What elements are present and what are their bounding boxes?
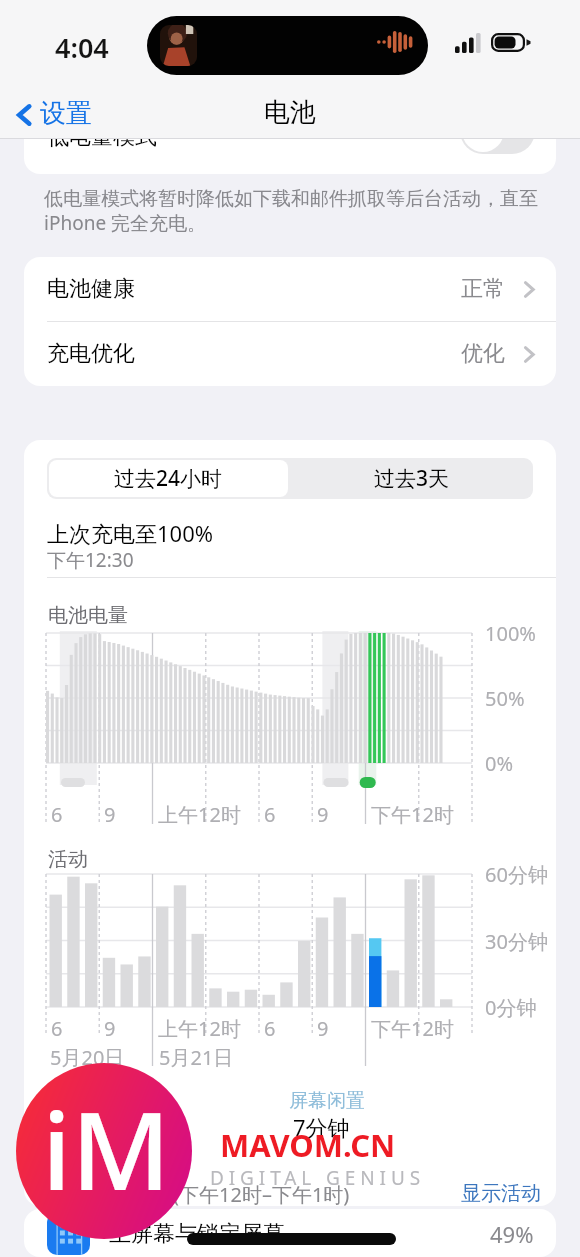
staticText: 49% — [490, 1219, 534, 1249]
staticText: 电池电量 — [48, 603, 128, 628]
staticText: 9 — [317, 1015, 329, 1042]
staticText: 优化 — [461, 340, 505, 368]
staticText: 低电量模式将暂时降低如下载和邮件抓取等后台活动，直至 iPhone 完全充电。 — [44, 187, 538, 235]
button[interactable]: 电池健康 — [24, 257, 556, 321]
staticText: 活动 — [48, 847, 88, 872]
staticText: 充电优化 — [47, 340, 135, 368]
button[interactable]: 低电量模式 — [24, 126, 556, 174]
staticText: 4:04 — [55, 29, 109, 66]
staticText: MAVOM.CN — [220, 1124, 396, 1166]
button[interactable]: 过去3天 — [290, 458, 533, 499]
staticText: 过去24小时 — [114, 464, 223, 493]
staticText: 设置 — [40, 97, 92, 130]
staticText: 上午12时 — [158, 801, 241, 828]
staticText: 50% — [485, 685, 525, 712]
staticText: 0分钟 — [485, 994, 537, 1021]
staticText: 60分钟 — [485, 861, 548, 888]
staticText: 屏幕闲置 — [289, 1089, 365, 1113]
staticText: 下午12:30 — [47, 547, 134, 573]
staticText: 过去3天 — [374, 464, 450, 493]
staticText: 7分钟 — [293, 1112, 350, 1142]
staticText: 9 — [104, 1015, 116, 1042]
staticText: 5月20日 — [50, 1044, 125, 1071]
staticText: 主屏幕与锁定屏幕 — [109, 1220, 285, 1248]
staticText: 低电量模式 — [47, 126, 157, 151]
button[interactable]: 过去24小时 — [49, 460, 288, 497]
staticText: 上次充电至100% — [47, 518, 214, 548]
staticText: 30分钟 — [485, 928, 548, 955]
staticText: 100% — [485, 620, 536, 647]
staticText: 下午12时 — [371, 801, 454, 828]
staticText: 5月21日 — [159, 1044, 234, 1071]
staticText: 上午12时 — [158, 1015, 241, 1042]
staticText: (下午12时–下午1时) — [173, 1181, 350, 1206]
staticText: DIGITAL GENIUS — [210, 1165, 426, 1191]
button[interactable]: 返回设置 — [8, 95, 96, 134]
staticText: 电池健康 — [47, 275, 135, 303]
staticText: 正常 — [461, 275, 505, 303]
button[interactable]: 充电优化 — [24, 322, 556, 386]
staticText: 9 — [104, 801, 116, 828]
staticText: 电池 — [264, 96, 316, 129]
staticText: 6 — [264, 801, 276, 828]
staticText: 6 — [51, 801, 63, 828]
staticText: 0% — [485, 750, 514, 777]
button[interactable]: 显示活动 — [461, 1181, 541, 1206]
staticText: 6 — [51, 1015, 63, 1042]
button[interactable]: 主屏幕与锁定屏幕 — [24, 1209, 556, 1257]
staticText: iM — [42, 1075, 171, 1222]
staticText: 9 — [317, 801, 329, 828]
staticText: 6 — [264, 1015, 276, 1042]
staticText: 下午12时 — [371, 1015, 454, 1042]
